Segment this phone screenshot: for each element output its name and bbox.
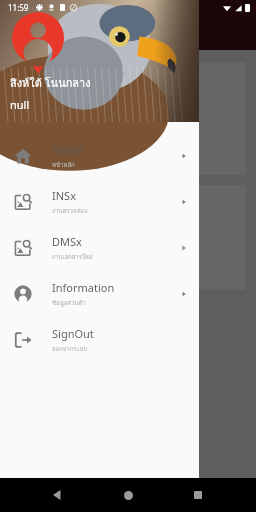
staticText: ข้อมูลส่วนตัว xyxy=(52,298,86,308)
button[interactable]: INSx xyxy=(0,179,199,225)
staticText: DMSx xyxy=(52,234,82,249)
button[interactable]: Recents xyxy=(186,483,210,507)
staticText: Information xyxy=(52,280,115,295)
staticText: INSx xyxy=(52,188,76,203)
staticText: งานเอกสารใหม่ xyxy=(52,252,93,262)
button[interactable]: Information xyxy=(0,271,199,317)
staticText: Home xyxy=(52,142,84,157)
staticText: 11:59 xyxy=(8,2,29,13)
staticText: รายงาน xyxy=(20,146,51,160)
button[interactable]: Home xyxy=(116,483,140,507)
staticText: ออกจากระบบ xyxy=(52,344,88,354)
staticText: SignOut xyxy=(52,326,94,341)
staticText: งานตรวจสอบ xyxy=(52,206,88,216)
button[interactable]: DMSx xyxy=(0,225,199,271)
staticText: สิงห์ใต้ โนนกลาง xyxy=(10,74,91,91)
staticText: null xyxy=(10,97,30,112)
staticText: ข่าวสาร news xyxy=(20,249,76,263)
staticText: หน้าหลัก xyxy=(52,160,75,170)
button[interactable]: SignOut xyxy=(0,317,199,363)
button[interactable]: Back xyxy=(46,483,70,507)
button[interactable]: Home xyxy=(0,133,199,179)
